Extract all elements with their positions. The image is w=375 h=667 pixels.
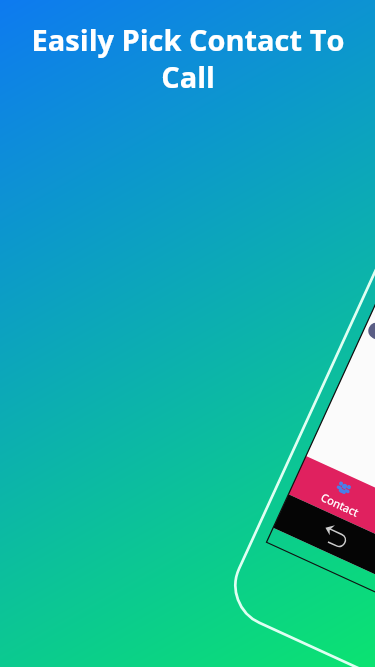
- staticText: Easily Pick Contact To Call: [28, 20, 348, 97]
